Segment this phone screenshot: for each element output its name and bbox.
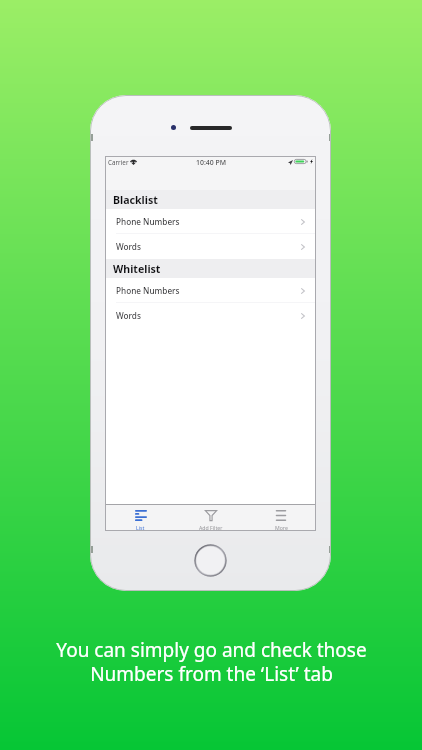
staticText: Add Filter (199, 524, 223, 531)
button[interactable]: Phone Numbers (105, 209, 316, 234)
staticText: 10:40 PM (196, 158, 226, 167)
button[interactable]: Words (105, 303, 316, 328)
button[interactable]: Phone Numbers (105, 278, 316, 303)
staticText: List (136, 524, 145, 531)
staticText: More (275, 524, 288, 531)
button[interactable]: Add Filter (176, 505, 246, 531)
staticText: Phone Numbers (116, 216, 180, 227)
staticText: Whitelist (113, 262, 161, 276)
staticText: Phone Numbers (116, 285, 180, 296)
button[interactable]: Words (105, 234, 316, 259)
staticText: Carrier (108, 158, 129, 167)
staticText: Words (116, 310, 141, 321)
staticText: Blacklist (113, 193, 158, 207)
button[interactable]: More (246, 505, 316, 531)
staticText: You can simply go and check those Number… (56, 637, 367, 686)
staticText: Words (116, 241, 141, 252)
button[interactable]: List (105, 505, 176, 531)
